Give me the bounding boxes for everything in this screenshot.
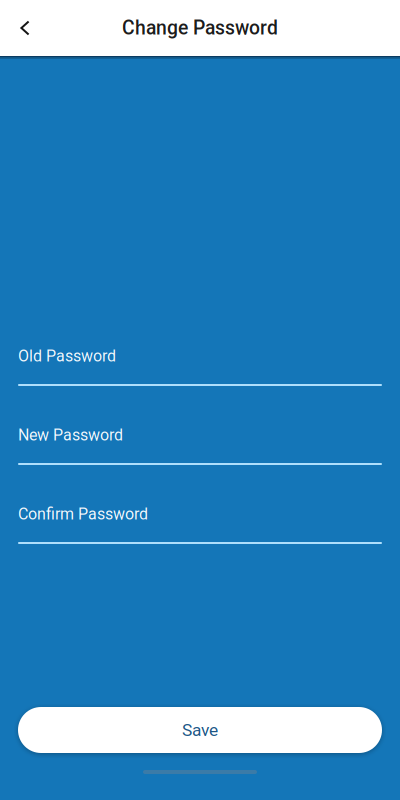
staticText: Change Password	[122, 17, 278, 39]
staticText: Confirm Password	[18, 505, 148, 523]
staticText: Old Password	[18, 347, 116, 365]
staticText: Save	[182, 720, 218, 740]
button[interactable]: Save	[18, 707, 382, 753]
button[interactable]: Back	[0, 3, 50, 53]
staticText: New Password	[18, 426, 123, 444]
